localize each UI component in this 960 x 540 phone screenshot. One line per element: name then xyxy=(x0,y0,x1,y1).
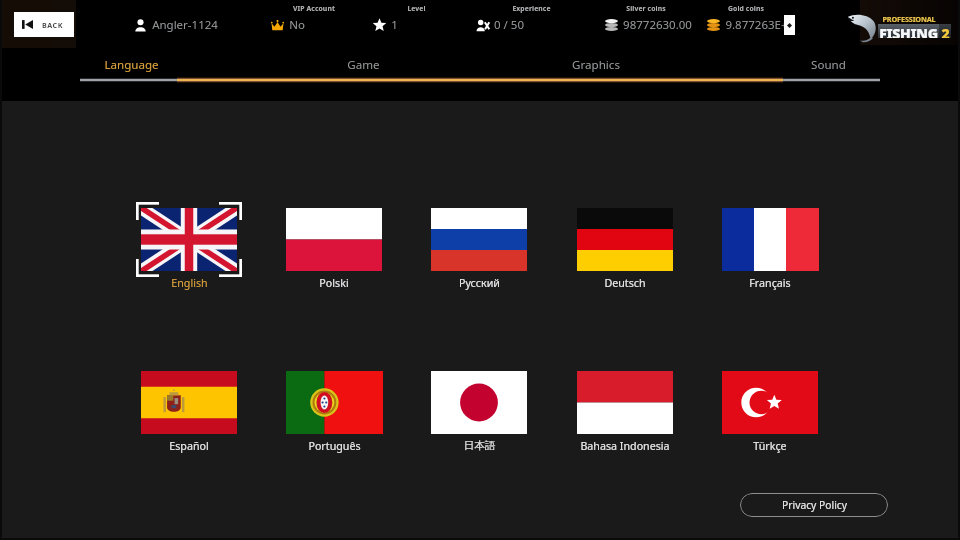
button[interactable]: English xyxy=(117,200,261,298)
button[interactable]: Add gold coins xyxy=(784,15,795,35)
staticText: 9.877263E+ xyxy=(725,17,788,33)
staticText: VIP Account xyxy=(293,4,335,13)
staticText: PROFESSIONAL xyxy=(882,14,936,24)
staticText: 1 xyxy=(391,17,398,33)
button[interactable]: Graphics xyxy=(479,55,712,75)
staticText: Gold coins xyxy=(728,4,764,13)
staticText: FISHING xyxy=(879,24,938,38)
staticText: 98772630.00 xyxy=(623,17,692,33)
button[interactable]: Español xyxy=(117,363,261,461)
button[interactable]: Français xyxy=(698,200,842,298)
staticText: Angler-1124 xyxy=(152,17,218,33)
button[interactable]: Türkçe xyxy=(698,363,842,461)
staticText: Level xyxy=(407,4,426,13)
staticText: Graphics xyxy=(572,57,620,73)
button[interactable]: Deutsch xyxy=(553,200,697,298)
staticText: Game xyxy=(347,57,380,73)
staticText: Русский xyxy=(459,276,500,291)
button[interactable]: Sound xyxy=(712,55,945,75)
button[interactable]: 日本語 xyxy=(407,363,551,461)
staticText: Deutsch xyxy=(604,276,646,291)
staticText: Português xyxy=(308,439,361,454)
button[interactable]: Language xyxy=(15,55,247,75)
staticText: Español xyxy=(169,439,209,454)
button[interactable]: BACK xyxy=(14,12,74,37)
staticText: Privacy Policy xyxy=(782,498,847,512)
staticText: Silver coins xyxy=(626,4,666,13)
staticText: Experience xyxy=(512,4,551,13)
button[interactable]: Bahasa Indonesia xyxy=(553,363,697,461)
staticText: 2 xyxy=(941,24,950,38)
staticText: Français xyxy=(749,276,791,291)
staticText: No xyxy=(289,17,305,33)
button[interactable]: Português xyxy=(262,363,406,461)
button[interactable]: Polski xyxy=(262,200,406,298)
staticText: Bahasa Indonesia xyxy=(580,439,670,454)
staticText: BACK xyxy=(42,20,63,30)
button[interactable]: Privacy Policy xyxy=(740,493,888,517)
button[interactable]: Game xyxy=(247,55,479,75)
staticText: 0 / 50 xyxy=(494,17,524,33)
staticText: 日本語 xyxy=(463,439,496,452)
staticText: Language xyxy=(104,57,159,73)
staticText: English xyxy=(171,276,208,291)
button[interactable]: Русский xyxy=(407,200,551,298)
staticText: Sound xyxy=(811,57,846,73)
staticText: Polski xyxy=(319,276,349,291)
staticText: Türkçe xyxy=(753,439,787,454)
